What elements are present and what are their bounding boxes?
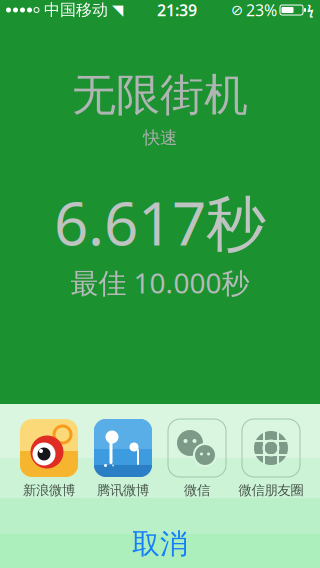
staticText: 微信朋友圈 xyxy=(238,482,303,498)
button[interactable]: 腾讯微博 xyxy=(87,419,159,498)
staticText: ϟ xyxy=(307,2,314,18)
staticText: 取消 xyxy=(132,527,188,561)
staticText: 腾讯微博 xyxy=(97,482,149,498)
staticText: 中国移动 xyxy=(44,0,108,20)
staticText: 快速 xyxy=(143,127,177,148)
staticText: 微信 xyxy=(184,482,210,498)
staticText: 新浪微博 xyxy=(23,482,75,498)
staticText: 23% xyxy=(246,0,277,21)
button[interactable]: 微信朋友圈 xyxy=(235,419,307,498)
button[interactable]: 微信 xyxy=(161,419,233,498)
button[interactable]: 取消 xyxy=(0,520,320,568)
staticText: 21:39 xyxy=(157,0,197,21)
button[interactable]: 新浪微博 xyxy=(13,419,85,498)
staticText: ⊘ xyxy=(231,2,243,18)
staticText: 6.617秒 xyxy=(54,182,266,262)
staticText: 最佳 10.000秒 xyxy=(70,264,249,301)
staticText: 无限街机 xyxy=(72,68,248,122)
staticText: ◥ xyxy=(112,2,123,18)
